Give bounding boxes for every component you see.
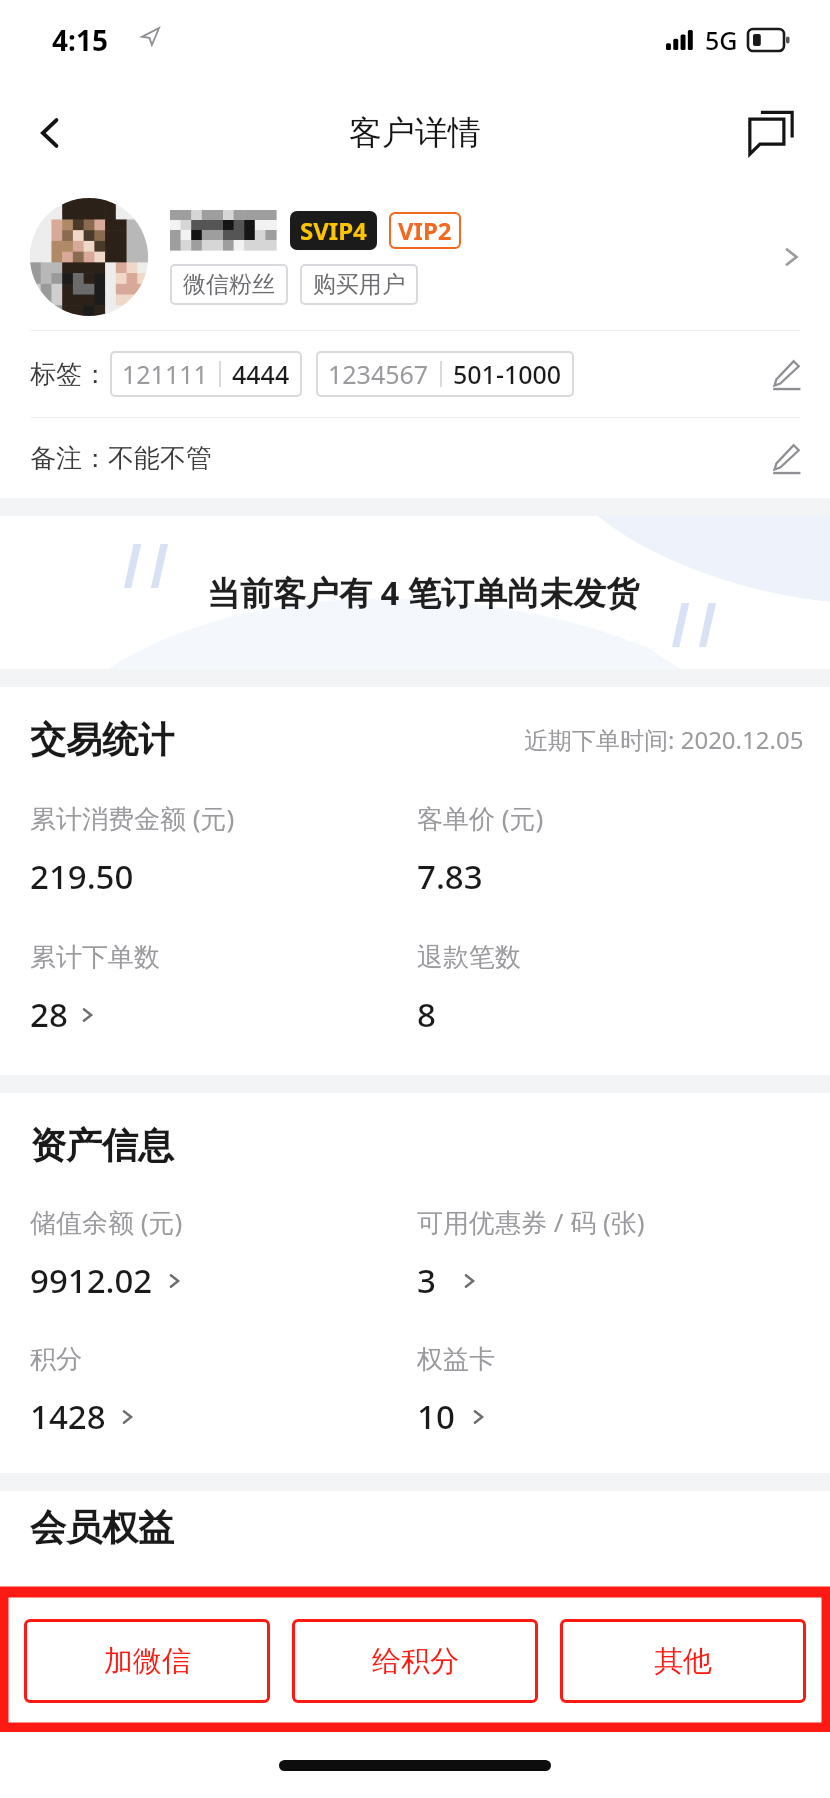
staticText: 10 [417, 1394, 455, 1439]
button[interactable]: 储值余额 (元) [30, 1204, 417, 1303]
button[interactable]: Back [20, 102, 82, 164]
button[interactable]: 微信粉丝 [183, 270, 275, 299]
button[interactable]: 可用优惠券 / 码 (张) [417, 1204, 804, 1303]
staticText: 4444 [232, 357, 290, 391]
staticText: 9912.02 [30, 1258, 153, 1303]
staticText: 积分 [30, 1343, 82, 1376]
button[interactable]: 购买用户 [313, 270, 405, 299]
staticText: 加微信 [104, 1643, 191, 1680]
button[interactable]: Edit [758, 346, 814, 402]
button[interactable]: Messages [738, 100, 804, 166]
button[interactable]: 积分 [30, 1343, 417, 1439]
staticText: 交易统计 [30, 717, 174, 762]
staticText: 累计下单数 [30, 941, 160, 974]
button[interactable]: SVIP4 [30, 198, 808, 316]
staticText: 备注：不能不管 [30, 442, 212, 475]
staticText: 1428 [30, 1394, 106, 1439]
staticText: 28 [30, 992, 68, 1037]
button[interactable]: Edit [758, 430, 814, 486]
staticText: 微信粉丝 [183, 270, 275, 299]
staticText: 购买用户 [313, 270, 405, 299]
staticText: 7.83 [417, 854, 483, 899]
staticText: 储值余额 (元) [30, 1204, 183, 1240]
staticText: 其他 [654, 1643, 712, 1680]
staticText: 给积分 [372, 1643, 459, 1680]
staticText: 当前客户有 4 笔订单尚未发货 [207, 570, 640, 615]
staticText: 客户详情 [349, 112, 481, 154]
button[interactable]: 权益卡 [417, 1343, 804, 1439]
staticText: SVIP4 [300, 214, 367, 247]
staticText: 8 [417, 992, 436, 1037]
button[interactable]: 客单价 (元) [417, 800, 804, 899]
staticText: 1234567 [328, 357, 429, 391]
button[interactable]: 标签： [30, 331, 814, 417]
staticText: 会员权益 [30, 1505, 174, 1550]
staticText: 退款笔数 [417, 941, 521, 974]
staticText: 4:15 [52, 21, 108, 59]
staticText: 121111 [122, 357, 208, 391]
button[interactable]: 累计下单数 [30, 941, 417, 1037]
staticText: 近期下单时间: 2020.12.05 [524, 723, 804, 756]
staticText: 3 [417, 1258, 436, 1303]
staticText: 501-1000 [453, 357, 562, 391]
staticText: 5G [705, 23, 738, 57]
staticText: 标签： [30, 358, 108, 391]
staticText: 资产信息 [30, 1123, 174, 1168]
button[interactable]: 给积分 [292, 1619, 538, 1703]
button[interactable]: 退款笔数 [417, 941, 804, 1037]
staticText: VIP2 [398, 214, 452, 247]
button[interactable]: 累计消费金额 (元) [30, 800, 417, 899]
staticText: 累计消费金额 (元) [30, 800, 235, 836]
button[interactable]: 备注：不能不管 [30, 418, 814, 498]
staticText: 可用优惠券 / 码 (张) [417, 1204, 645, 1240]
button[interactable]: 加微信 [24, 1619, 270, 1703]
staticText: 客单价 (元) [417, 800, 544, 836]
button[interactable]: 其他 [560, 1619, 806, 1703]
staticText: 权益卡 [417, 1343, 495, 1376]
staticText: 219.50 [30, 854, 134, 899]
